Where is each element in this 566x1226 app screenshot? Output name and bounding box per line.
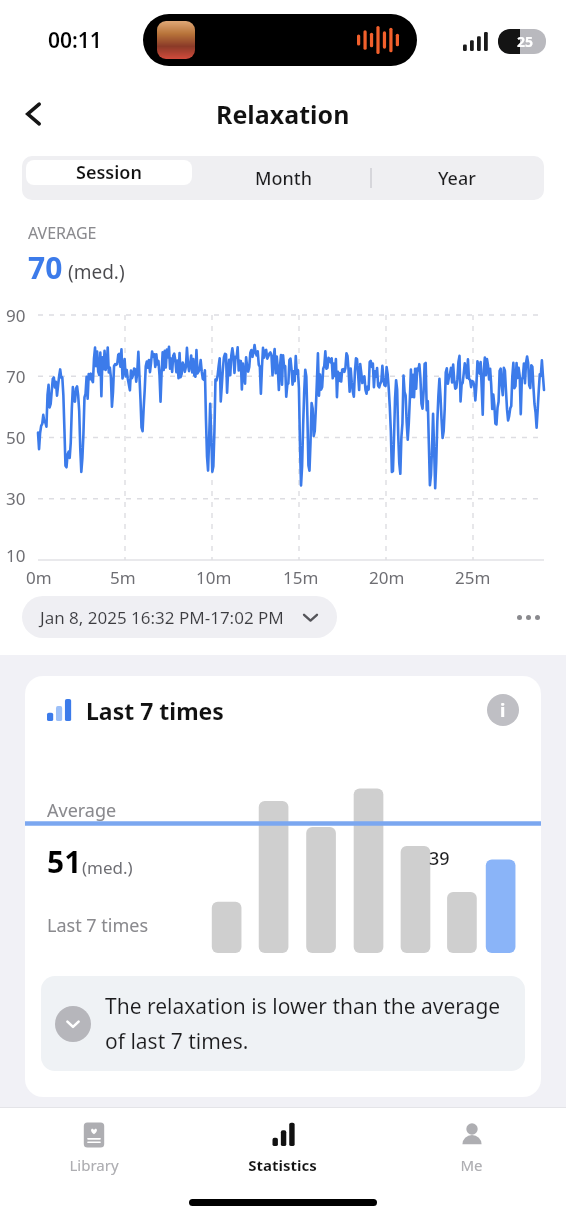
staticText: 30 (6, 487, 26, 510)
staticText: Month (255, 166, 312, 191)
staticText: 0m (26, 566, 52, 589)
staticText: 70 (28, 247, 63, 288)
staticText: 15m (283, 566, 319, 589)
staticText: (med.) (68, 259, 125, 285)
button[interactable]: Statistics (188, 1120, 377, 1175)
staticText: 51 (47, 841, 82, 882)
staticText: Session (76, 160, 142, 185)
staticText: Last 7 times (86, 695, 224, 726)
button[interactable]: Jan 8, 2025 16:32 PM-17:02 PM (22, 596, 337, 638)
button[interactable]: Session (26, 160, 192, 185)
staticText: 70 (6, 365, 26, 388)
staticText: 5m (110, 566, 136, 589)
button[interactable]: The relaxation is lower than the average… (41, 976, 525, 1071)
staticText: Year (438, 166, 476, 191)
staticText: 00:11 (48, 26, 102, 55)
button[interactable]: Library (0, 1120, 188, 1175)
staticText: Library (69, 1155, 119, 1175)
staticText: Me (460, 1155, 483, 1175)
button[interactable]: Info (487, 694, 519, 726)
staticText: Last 7 times (47, 913, 149, 938)
staticText: i (500, 698, 506, 723)
staticText: 20m (369, 566, 405, 589)
staticText: Average (47, 798, 117, 823)
button[interactable]: Me (377, 1120, 566, 1175)
button[interactable]: Year (370, 156, 544, 200)
staticText: Relaxation (216, 97, 350, 131)
staticText: The relaxation is lower than the average… (105, 992, 511, 1055)
button[interactable]: More options (506, 596, 550, 638)
button[interactable]: Month (196, 156, 370, 200)
staticText: 90 (6, 304, 26, 327)
staticText: 25m (455, 566, 491, 589)
staticText: Jan 8, 2025 16:32 PM-17:02 PM (40, 606, 284, 629)
staticText: Statistics (248, 1155, 317, 1175)
staticText: 10 (6, 544, 26, 567)
staticText: 39 (429, 846, 450, 871)
staticText: AVERAGE (28, 222, 97, 244)
button[interactable]: Back (10, 90, 58, 138)
staticText: (med.) (82, 856, 133, 879)
staticText: 50 (6, 426, 26, 449)
staticText: 25 (517, 32, 534, 51)
staticText: 10m (196, 566, 232, 589)
